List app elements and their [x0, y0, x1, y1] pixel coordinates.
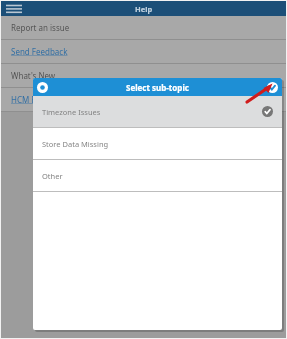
staticText: HCM Release [11, 94, 61, 105]
staticText: Other [42, 171, 63, 181]
staticText: Help [135, 4, 153, 14]
staticText: Select sub-topic [126, 82, 189, 93]
button[interactable]: Menu [3, 2, 25, 16]
button[interactable]: Timezone Issues [33, 96, 282, 127]
button[interactable]: Report an issue [1, 16, 286, 39]
button[interactable]: Send Feedback [1, 40, 286, 63]
button[interactable]: Close [36, 81, 49, 94]
staticText: Store Data Missing [42, 139, 109, 149]
staticText: What's New [11, 70, 56, 81]
staticText: Report an issue [11, 22, 70, 33]
staticText: Timezone Issues [42, 107, 101, 117]
button[interactable]: HCM Release [1, 88, 286, 111]
button[interactable]: Other [33, 160, 282, 191]
button[interactable]: What's New [1, 64, 286, 87]
button[interactable]: Confirm [266, 81, 279, 94]
button[interactable]: Store Data Missing [33, 128, 282, 159]
staticText: Send Feedback [11, 46, 68, 57]
